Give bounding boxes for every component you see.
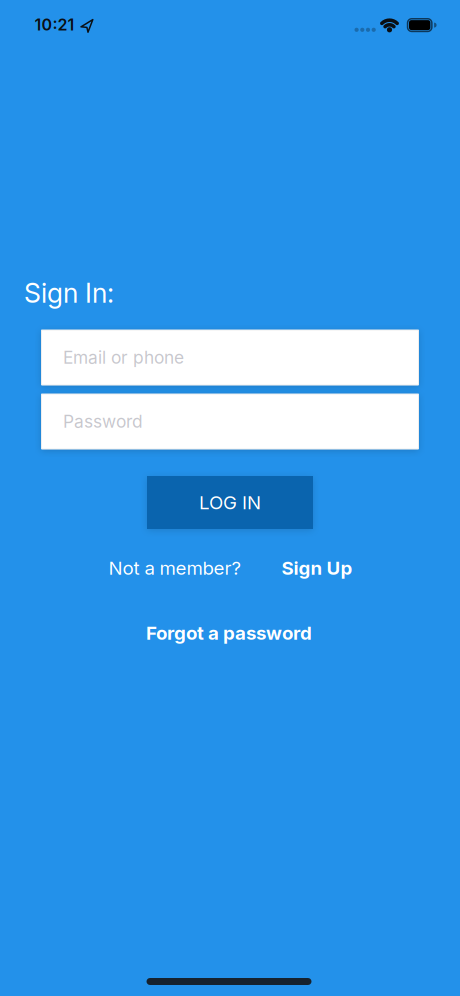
staticText: Email or phone: [63, 347, 184, 368]
staticText: Not a member?: [108, 557, 241, 579]
button[interactable]: Email or phone: [41, 329, 419, 385]
button[interactable]: LOG IN: [147, 476, 313, 529]
staticText: Sign In:: [24, 277, 114, 309]
staticText: Sign Up: [281, 557, 352, 579]
staticText: 10:21: [34, 15, 74, 34]
button[interactable]: Password: [41, 393, 419, 449]
button[interactable]: Forgot a password: [146, 622, 312, 644]
staticText: Password: [63, 411, 143, 432]
button[interactable]: Sign Up: [281, 557, 352, 579]
staticText: Forgot a password: [146, 622, 312, 644]
staticText: LOG IN: [199, 491, 261, 513]
